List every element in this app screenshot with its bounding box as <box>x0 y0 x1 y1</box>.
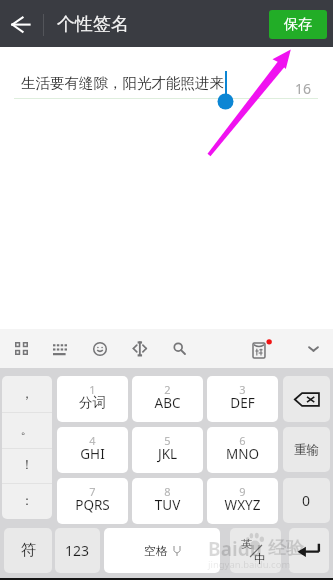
staticText: jingyan.baidu.com <box>208 558 291 571</box>
staticText: 1 <box>57 382 128 397</box>
button[interactable]: 9 <box>207 478 278 524</box>
staticText: 9 <box>207 484 278 499</box>
staticText: 保存 <box>284 16 312 34</box>
staticText: 7 <box>57 484 128 499</box>
button[interactable]: 4 <box>57 427 128 473</box>
staticText: MNO <box>207 445 278 463</box>
button[interactable]: Keyboard <box>43 329 77 368</box>
staticText: 经验 <box>268 537 304 560</box>
staticText: ABC <box>132 394 203 412</box>
staticText: 生活要有缝隙，阳光才能照进来 <box>21 74 224 92</box>
staticText: PQRS <box>57 496 128 514</box>
button[interactable]: 2 <box>132 376 203 422</box>
button[interactable]: 重输 <box>283 427 330 472</box>
staticText: 8 <box>132 484 203 499</box>
button[interactable]: Back <box>0 0 43 47</box>
button[interactable]: Search <box>162 329 196 368</box>
button[interactable]: 3 <box>207 376 278 422</box>
button[interactable]: 6 <box>207 427 278 473</box>
staticText: WXYZ <box>207 496 278 514</box>
staticText: Baidu <box>208 536 263 562</box>
button[interactable]: ， <box>2 376 52 519</box>
staticText: 16 <box>295 79 312 98</box>
staticText: ！ <box>2 456 52 472</box>
button[interactable]: 1 <box>57 376 128 422</box>
staticText: ， <box>2 385 52 401</box>
staticText: 3 <box>207 382 278 397</box>
button[interactable]: 5 <box>132 427 203 473</box>
staticText: JKL <box>132 445 203 463</box>
staticText: 符 <box>21 541 36 560</box>
button[interactable]: 8 <box>132 478 203 524</box>
staticText: 英 <box>241 537 252 551</box>
button[interactable]: Move cursor <box>122 329 156 368</box>
staticText: 0 <box>302 491 311 510</box>
button[interactable]: 123 <box>55 528 100 573</box>
button[interactable]: Emoji <box>83 329 117 368</box>
button[interactable]: 英 <box>230 528 281 573</box>
staticText: 重输 <box>294 442 319 458</box>
staticText: 2 <box>132 382 203 397</box>
staticText: DEF <box>207 394 278 412</box>
button[interactable]: 0 <box>283 478 330 523</box>
button[interactable]: 空格 <box>104 528 220 573</box>
button[interactable]: 符 <box>4 528 52 573</box>
button[interactable]: Layout <box>4 329 38 368</box>
staticText: 分词 <box>57 394 128 411</box>
staticText: 6 <box>207 433 278 448</box>
staticText: ： <box>2 492 52 508</box>
button[interactable]: Backspace <box>283 376 330 422</box>
staticText: TUV <box>132 496 203 514</box>
staticText: GHI <box>57 445 128 463</box>
button[interactable]: 保存 <box>269 10 327 39</box>
staticText: 123 <box>65 541 90 560</box>
button[interactable]: Calendar <box>245 329 279 368</box>
staticText: 中 <box>254 551 266 566</box>
staticText: 空格 <box>144 543 168 558</box>
staticText: 。 <box>2 421 52 437</box>
staticText: 个性签名 <box>57 13 129 36</box>
button[interactable]: Hide keyboard <box>296 329 330 368</box>
staticText: 5 <box>132 433 203 448</box>
button[interactable]: Enter <box>289 528 329 573</box>
button[interactable]: 7 <box>57 478 128 524</box>
staticText: 4 <box>57 433 128 448</box>
